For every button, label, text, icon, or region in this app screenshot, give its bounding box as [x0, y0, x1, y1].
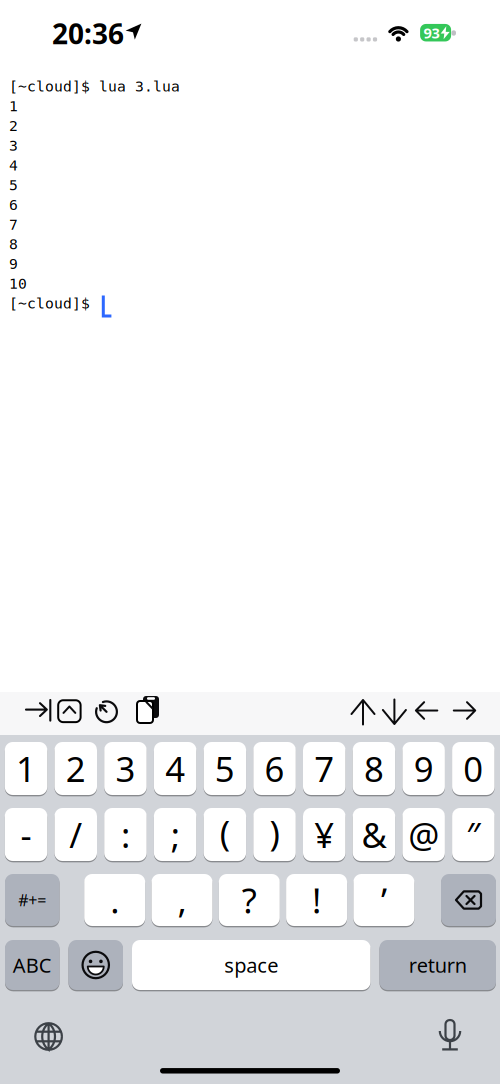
staticText: :: [121, 811, 130, 857]
staticText: 3: [9, 137, 18, 154]
staticText: #+=: [18, 889, 46, 911]
button[interactable]: 6: [253, 742, 296, 795]
button[interactable]: 7: [303, 742, 345, 795]
button[interactable]: Up: [0, 0, 500, 1084]
staticText: 2: [66, 745, 86, 791]
staticText: ″: [466, 811, 480, 857]
button[interactable]: (: [204, 808, 246, 861]
button[interactable]: return: [379, 940, 496, 990]
button[interactable]: History: [0, 0, 500, 1084]
button[interactable]: 1: [5, 742, 47, 795]
staticText: 6: [265, 745, 285, 791]
button[interactable]: :: [104, 808, 147, 861]
staticText: 8: [9, 236, 18, 253]
staticText: .: [110, 877, 119, 923]
button[interactable]: Next keyboard: [34, 1021, 64, 1051]
button[interactable]: ): [253, 808, 296, 861]
staticText: ’: [381, 877, 387, 923]
button[interactable]: Escape: [0, 0, 500, 1084]
button[interactable]: -: [5, 808, 47, 861]
button[interactable]: Dictate: [438, 1020, 462, 1051]
staticText: ?: [242, 877, 257, 923]
staticText: !: [312, 877, 321, 923]
button[interactable]: @: [402, 808, 445, 861]
staticText: (: [220, 809, 230, 855]
button[interactable]: 5: [204, 742, 246, 795]
staticText: ¥: [314, 811, 334, 857]
button[interactable]: !: [286, 874, 347, 926]
button[interactable]: .: [84, 874, 145, 926]
button[interactable]: 8: [353, 742, 395, 795]
staticText: 10: [9, 275, 27, 292]
button[interactable]: ABC: [5, 940, 59, 990]
button[interactable]: ’: [353, 874, 414, 926]
staticText: 7: [9, 216, 18, 233]
staticText: 4: [165, 745, 185, 791]
button[interactable]: ?: [219, 874, 280, 926]
button[interactable]: Delete: [441, 874, 496, 926]
button[interactable]: 0: [452, 742, 495, 795]
button[interactable]: /: [54, 808, 97, 861]
staticText: ,: [177, 877, 186, 923]
staticText: -: [21, 811, 32, 857]
button[interactable]: #+=: [5, 874, 59, 926]
staticText: [~cloud]$ lua 3.lua: [9, 78, 180, 95]
staticText: ): [270, 809, 280, 855]
staticText: 1: [9, 98, 18, 114]
staticText: 1: [16, 745, 36, 791]
staticText: ;: [171, 811, 180, 857]
staticText: 0: [463, 745, 483, 791]
button[interactable]: Paste: [0, 0, 500, 1084]
button[interactable]: 3: [104, 742, 147, 795]
button[interactable]: ¥: [303, 808, 345, 861]
staticText: 8: [364, 745, 384, 791]
staticText: /: [69, 811, 82, 857]
button[interactable]: ″: [452, 808, 495, 861]
staticText: 9: [9, 256, 18, 272]
button[interactable]: Tab: [0, 0, 500, 1084]
staticText: 5: [9, 177, 18, 193]
staticText: @: [408, 811, 439, 857]
button[interactable]: Down: [0, 0, 500, 1084]
button[interactable]: space: [132, 940, 370, 990]
button[interactable]: ,: [151, 874, 212, 926]
staticText: 20:36: [52, 15, 124, 52]
staticText: 5: [215, 745, 235, 791]
button[interactable]: Right: [0, 0, 500, 1084]
staticText: space: [224, 952, 278, 978]
button[interactable]: 4: [154, 742, 196, 795]
staticText: &: [361, 811, 386, 857]
staticText: ABC: [13, 952, 52, 978]
staticText: 2: [9, 117, 18, 134]
button[interactable]: 2: [54, 742, 97, 795]
staticText: 9: [414, 745, 434, 791]
staticText: return: [409, 952, 467, 978]
button[interactable]: Emoji: [68, 940, 123, 990]
staticText: 6: [9, 196, 18, 213]
staticText: 3: [115, 745, 135, 791]
staticText: 4: [9, 157, 18, 174]
button[interactable]: ;: [154, 808, 196, 861]
staticText: 93: [423, 23, 439, 43]
button[interactable]: &: [353, 808, 395, 861]
button[interactable]: Left: [0, 0, 500, 1084]
staticText: 7: [314, 745, 334, 791]
staticText: [~cloud]$: [9, 295, 90, 312]
button[interactable]: 9: [402, 742, 445, 795]
